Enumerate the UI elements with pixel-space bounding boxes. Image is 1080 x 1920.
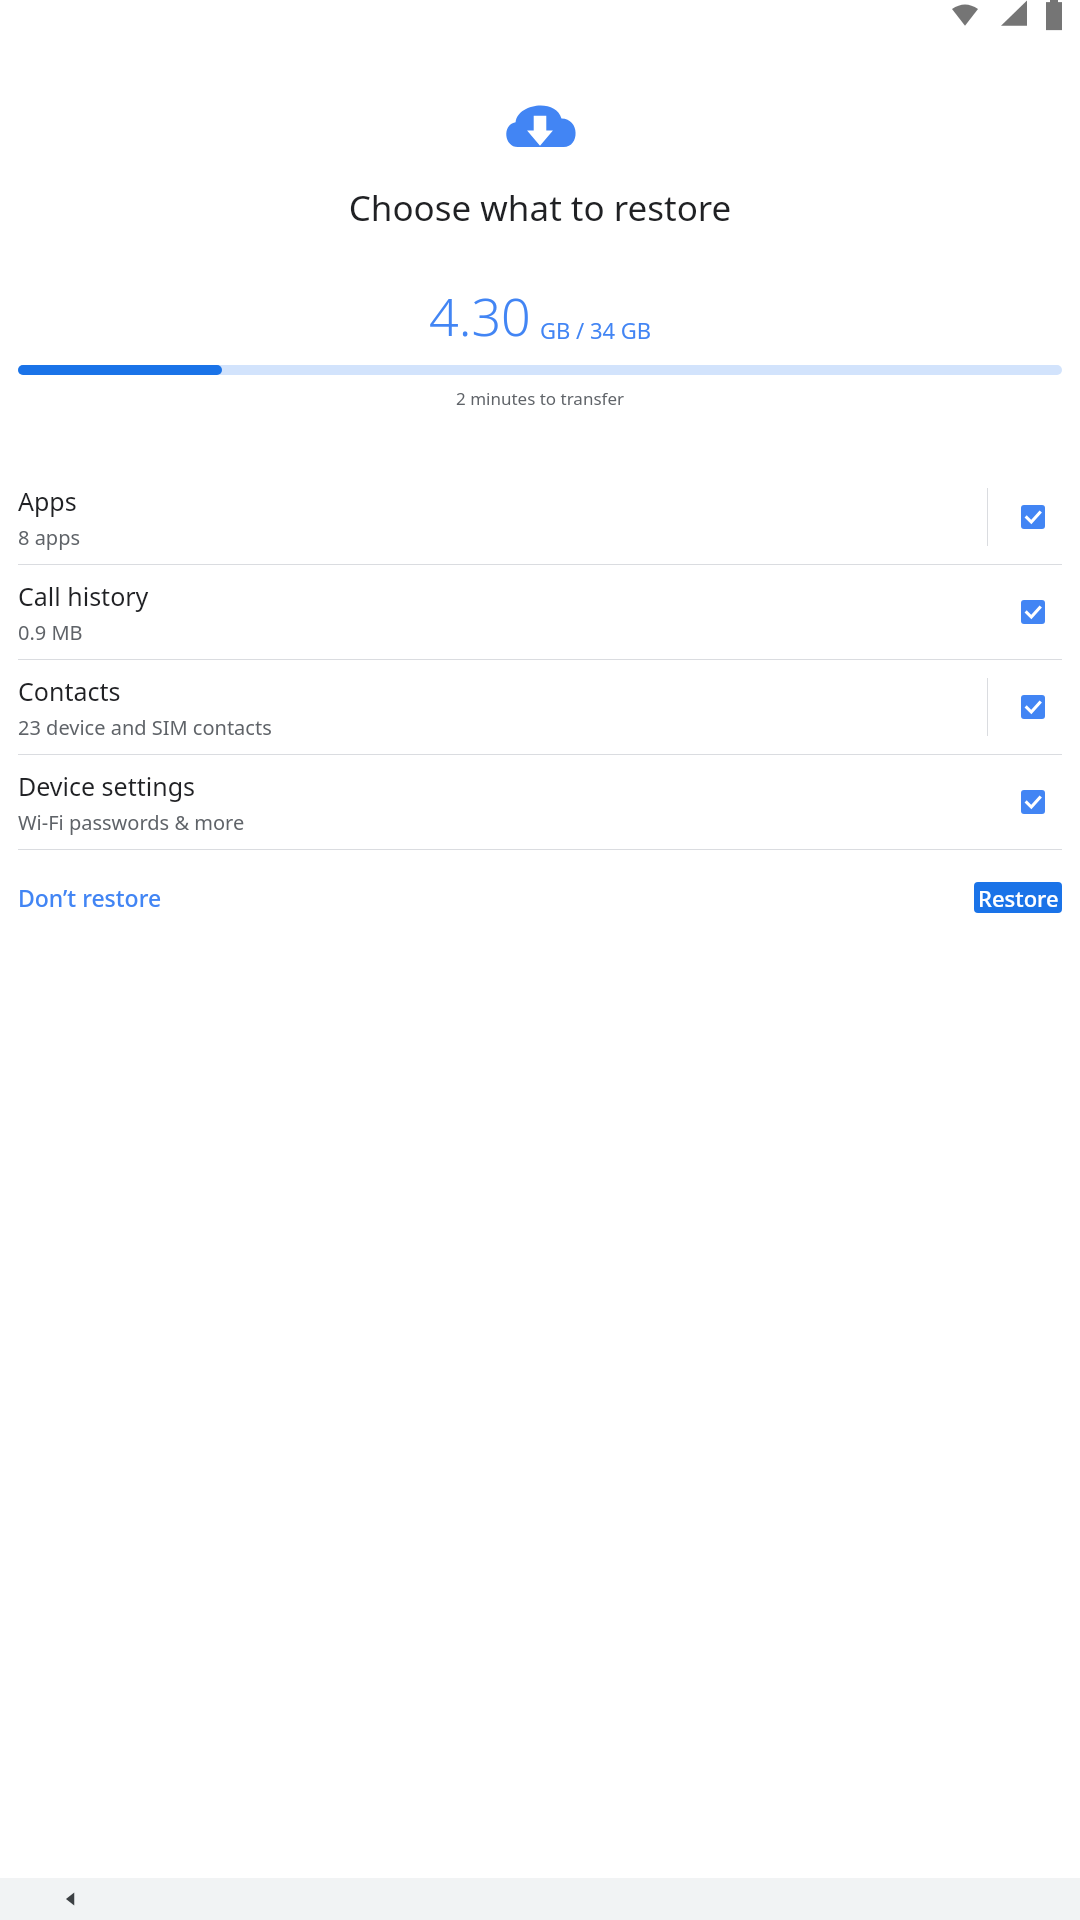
staticText: 8 apps	[18, 524, 81, 551]
button[interactable]: Apps	[0, 470, 1080, 564]
staticText: Call history	[18, 579, 149, 613]
staticText: Don’t restore	[18, 882, 162, 913]
button[interactable]: Toggle Contacts	[1004, 678, 1062, 736]
staticText: 4.30	[429, 280, 531, 351]
staticText: Choose what to restore	[0, 184, 1080, 232]
button[interactable]: Call history	[0, 565, 1080, 659]
button[interactable]: Don’t restore	[18, 872, 162, 923]
staticText: Restore	[978, 883, 1059, 913]
staticText: Device settings	[18, 769, 195, 803]
staticText: 0.9 MB	[18, 619, 83, 646]
button[interactable]: Toggle Device settings	[1004, 773, 1062, 831]
button[interactable]: Restore	[974, 882, 1062, 913]
button[interactable]: Toggle Call history	[1004, 583, 1062, 641]
button[interactable]: Contacts	[0, 660, 1080, 754]
button[interactable]: Device settings	[0, 755, 1080, 849]
button[interactable]: Back	[56, 1884, 86, 1914]
staticText: Wi-Fi passwords & more	[18, 809, 245, 836]
button[interactable]: Toggle Apps	[1004, 488, 1062, 546]
staticText: Contacts	[18, 674, 121, 708]
staticText: Apps	[18, 484, 77, 518]
staticText: GB / 34 GB	[540, 315, 652, 345]
staticText: 23 device and SIM contacts	[18, 714, 272, 741]
staticText: 2 minutes to transfer	[0, 387, 1080, 410]
